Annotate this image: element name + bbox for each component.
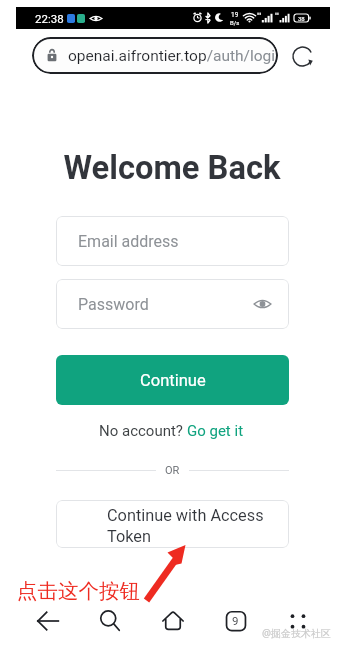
button[interactable]: Continue [56,355,289,405]
button[interactable]: More options [281,604,314,637]
staticText: 点击这个按钮 [17,578,140,604]
button[interactable]: Search [93,604,126,637]
staticText: 19 [231,11,239,19]
staticText: Continue [140,371,206,390]
button[interactable]: Tabs [219,604,252,637]
staticText: Welcome Back [1,149,342,187]
button[interactable]: Home [156,604,189,637]
staticText: Email address [78,232,179,251]
button[interactable]: Go get it [187,422,244,440]
button[interactable]: Reload [288,42,316,70]
staticText: OR [165,464,180,477]
staticText: Password [78,295,149,314]
button[interactable]: Email address [56,216,289,266]
button[interactable]: Password [56,279,289,329]
staticText: 38 [298,15,305,22]
button[interactable]: Continue with Access Token [56,500,289,548]
staticText: 22:38 [35,12,64,25]
staticText: 9 [232,614,239,627]
staticText: No account? [99,422,187,440]
staticText: @掘金技术社区 [262,626,331,640]
button[interactable]: Back [31,604,64,637]
staticText: B/s [230,19,240,26]
staticText: openai.aifrontier.top/auth/login [68,47,278,65]
button[interactable]: openai.aifrontier.top/auth/login [32,37,278,74]
staticText: Continue with Access Token [107,506,272,546]
